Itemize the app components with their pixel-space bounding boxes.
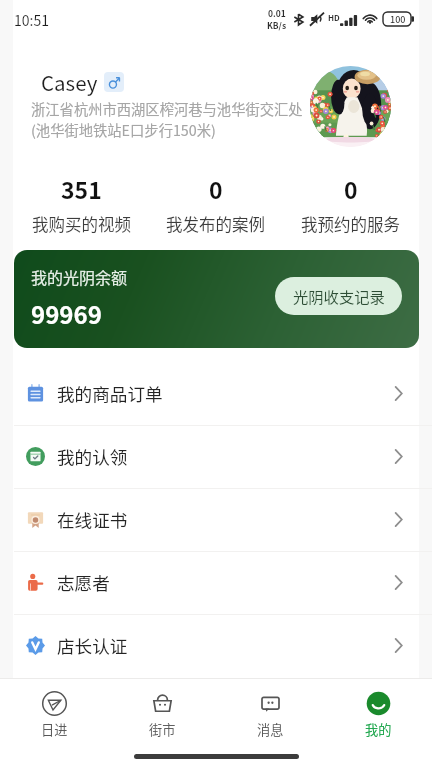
staticText: (池华街地铁站E口步行150米) [31,119,216,140]
other: 街市 [150,691,175,716]
staticText: 10:51 [14,10,49,30]
staticText: 光阴收支记录 [293,285,385,307]
other: 日进 [42,691,67,716]
staticText: 浙江省杭州市西湖区榨河巷与池华街交汇处 [31,98,303,119]
staticText: KB/s [267,19,287,31]
button[interactable]: 我的认领 [0,425,432,488]
other: 我的 [366,691,391,716]
staticText: 街市 [149,720,176,739]
staticText: 我的商品订单 [57,381,163,406]
staticText: 0.01 [268,7,286,19]
staticText: 我发布的案例 [166,212,265,236]
button[interactable]: 街市 [108,683,216,747]
button[interactable]: 光阴收支记录 [275,277,402,315]
staticText: 351 [61,172,102,205]
staticText: 我的认领 [57,444,128,469]
staticText: 日进 [41,720,68,739]
staticText: 志愿者 [57,570,110,595]
button[interactable]: 日进 [0,683,108,747]
staticText: 0 [344,172,358,205]
staticText: Casey [41,67,98,97]
staticText: 我的光阴余额 [31,265,128,288]
button[interactable]: 我的 [324,683,432,747]
staticText: 消息 [257,720,284,739]
staticText: 0 [209,172,223,205]
staticText: 在线证书 [57,507,128,532]
staticText: 店长认证 [57,633,128,658]
button[interactable]: 店长认证 [0,614,432,677]
button[interactable]: 在线证书 [0,488,432,551]
staticText: HD [328,12,340,24]
button[interactable]: 消息 [216,683,324,747]
staticText: 100 [390,13,406,26]
button[interactable]: 我的商品订单 [0,362,432,425]
staticText: 99969 [31,296,102,331]
staticText: 我预约的服务 [301,212,400,236]
other: 消息 [258,691,283,716]
staticText: 我购买的视频 [32,212,131,236]
button[interactable]: 志愿者 [0,551,432,614]
staticText: 我的 [365,720,392,739]
